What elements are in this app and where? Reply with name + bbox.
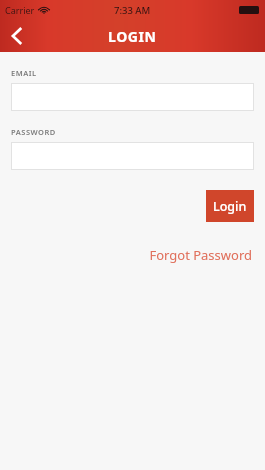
button[interactable]: Forgot Password bbox=[147, 244, 254, 266]
staticText: PASSWORD bbox=[11, 127, 56, 137]
staticText: Login bbox=[213, 198, 247, 215]
button[interactable] bbox=[11, 83, 254, 111]
button[interactable] bbox=[11, 142, 254, 170]
button[interactable]: Back bbox=[0, 20, 32, 52]
staticText: LOGIN bbox=[108, 27, 157, 46]
staticText: Forgot Password bbox=[149, 246, 252, 264]
staticText: EMAIL bbox=[11, 68, 37, 78]
staticText: Carrier bbox=[5, 4, 35, 16]
staticText: 7:33 AM bbox=[114, 4, 151, 17]
button[interactable]: Login bbox=[206, 190, 254, 222]
